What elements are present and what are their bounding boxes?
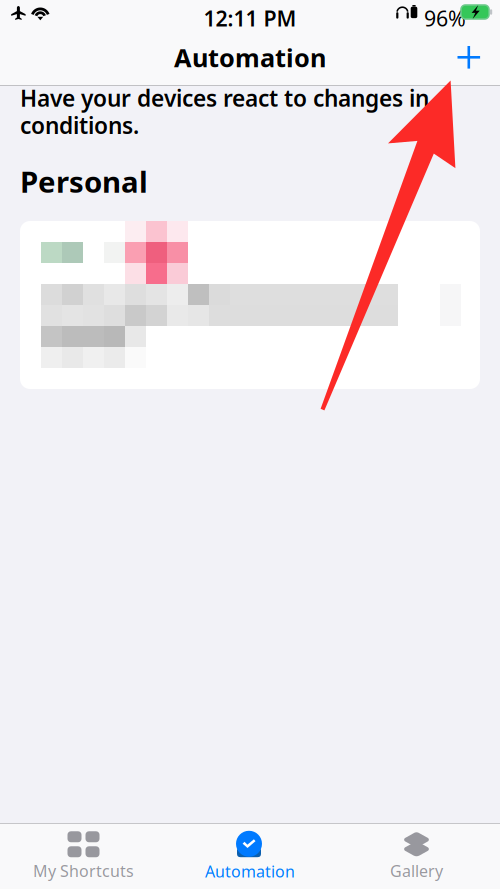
button[interactable]: My Shortcuts	[0, 824, 166, 889]
staticText: Have your devices react to changes in co…	[20, 83, 429, 140]
staticText: Gallery	[390, 860, 443, 881]
staticText: 96%	[424, 4, 466, 32]
staticText: Automation	[205, 861, 295, 882]
staticText: Automation	[174, 41, 326, 74]
staticText: 12:11 PM	[203, 4, 296, 32]
staticText: My Shortcuts	[33, 860, 134, 881]
staticText: Personal	[20, 162, 148, 201]
button[interactable]: Gallery	[333, 824, 499, 889]
button[interactable]: New Automation	[447, 35, 491, 79]
button[interactable]: Automation	[166, 824, 333, 889]
